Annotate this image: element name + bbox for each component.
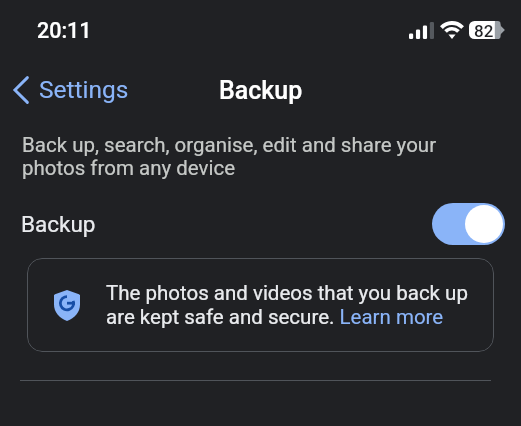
button[interactable]: Backup toggle, on [432, 203, 505, 245]
button[interactable]: Learn more [339, 302, 445, 328]
staticText: Settings [39, 75, 129, 104]
button[interactable]: Settings [8, 71, 137, 108]
staticText: Back up, search, organise, edit and shar… [22, 133, 462, 180]
staticText: The photos and videos that you back up a… [106, 281, 486, 329]
staticText: Backup [219, 76, 303, 105]
staticText: 82 [474, 21, 494, 39]
staticText: 20:11 [37, 18, 92, 43]
staticText: Backup [21, 211, 96, 237]
button[interactable]: Backup [0, 196, 521, 252]
